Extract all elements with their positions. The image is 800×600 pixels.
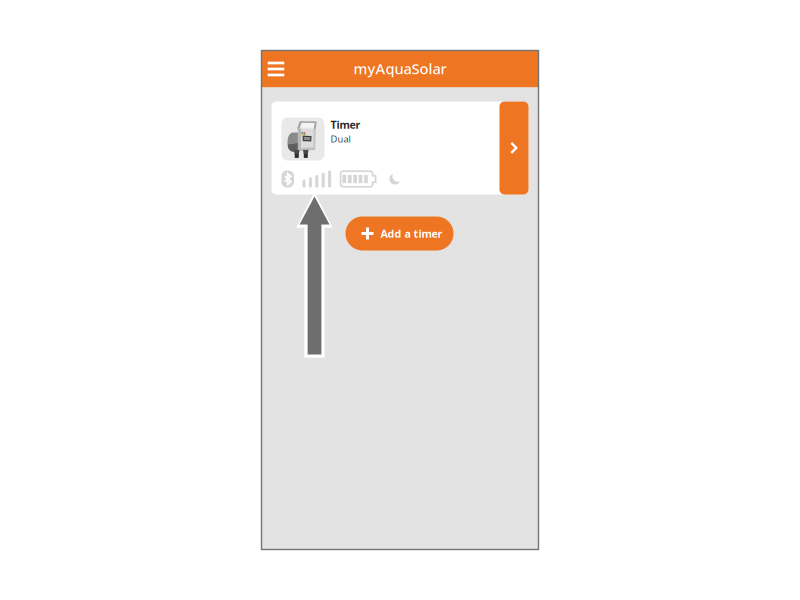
staticText: Timer	[330, 117, 360, 132]
button[interactable]: Menu	[261, 50, 290, 87]
button[interactable]: Timer	[271, 101, 528, 194]
staticText: Add a timer	[380, 226, 442, 241]
staticText: Dual	[330, 133, 350, 145]
button[interactable]: Add a timer	[345, 216, 453, 250]
staticText: myAquaSolar	[353, 59, 446, 78]
